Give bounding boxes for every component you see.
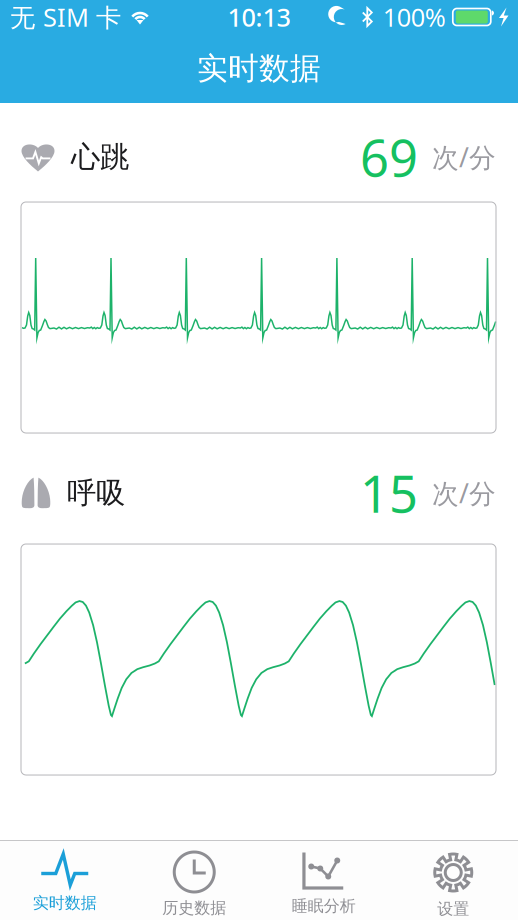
button[interactable]: 设置 [388,840,518,920]
staticText: 69 [360,123,418,191]
staticText: 设置 [437,899,469,919]
staticText: 10:13 [227,0,290,34]
button[interactable]: 睡眠分析 [259,840,388,920]
button[interactable]: 实时数据 [0,34,518,103]
staticText: 次/分 [432,139,496,175]
staticText: 呼吸 [67,475,125,511]
staticText: 无 SIM 卡 [10,0,121,34]
staticText: 历史数据 [162,898,226,918]
staticText: 心跳 [71,139,129,175]
staticText: 100% [383,0,446,34]
staticText: 睡眠分析 [292,896,356,916]
staticText: 15 [360,459,418,527]
button[interactable]: 历史数据 [129,840,259,920]
staticText: 实时数据 [33,893,97,913]
staticText: 次/分 [432,475,496,511]
button[interactable]: 实时数据 [0,840,129,920]
staticText: 实时数据 [197,50,321,87]
